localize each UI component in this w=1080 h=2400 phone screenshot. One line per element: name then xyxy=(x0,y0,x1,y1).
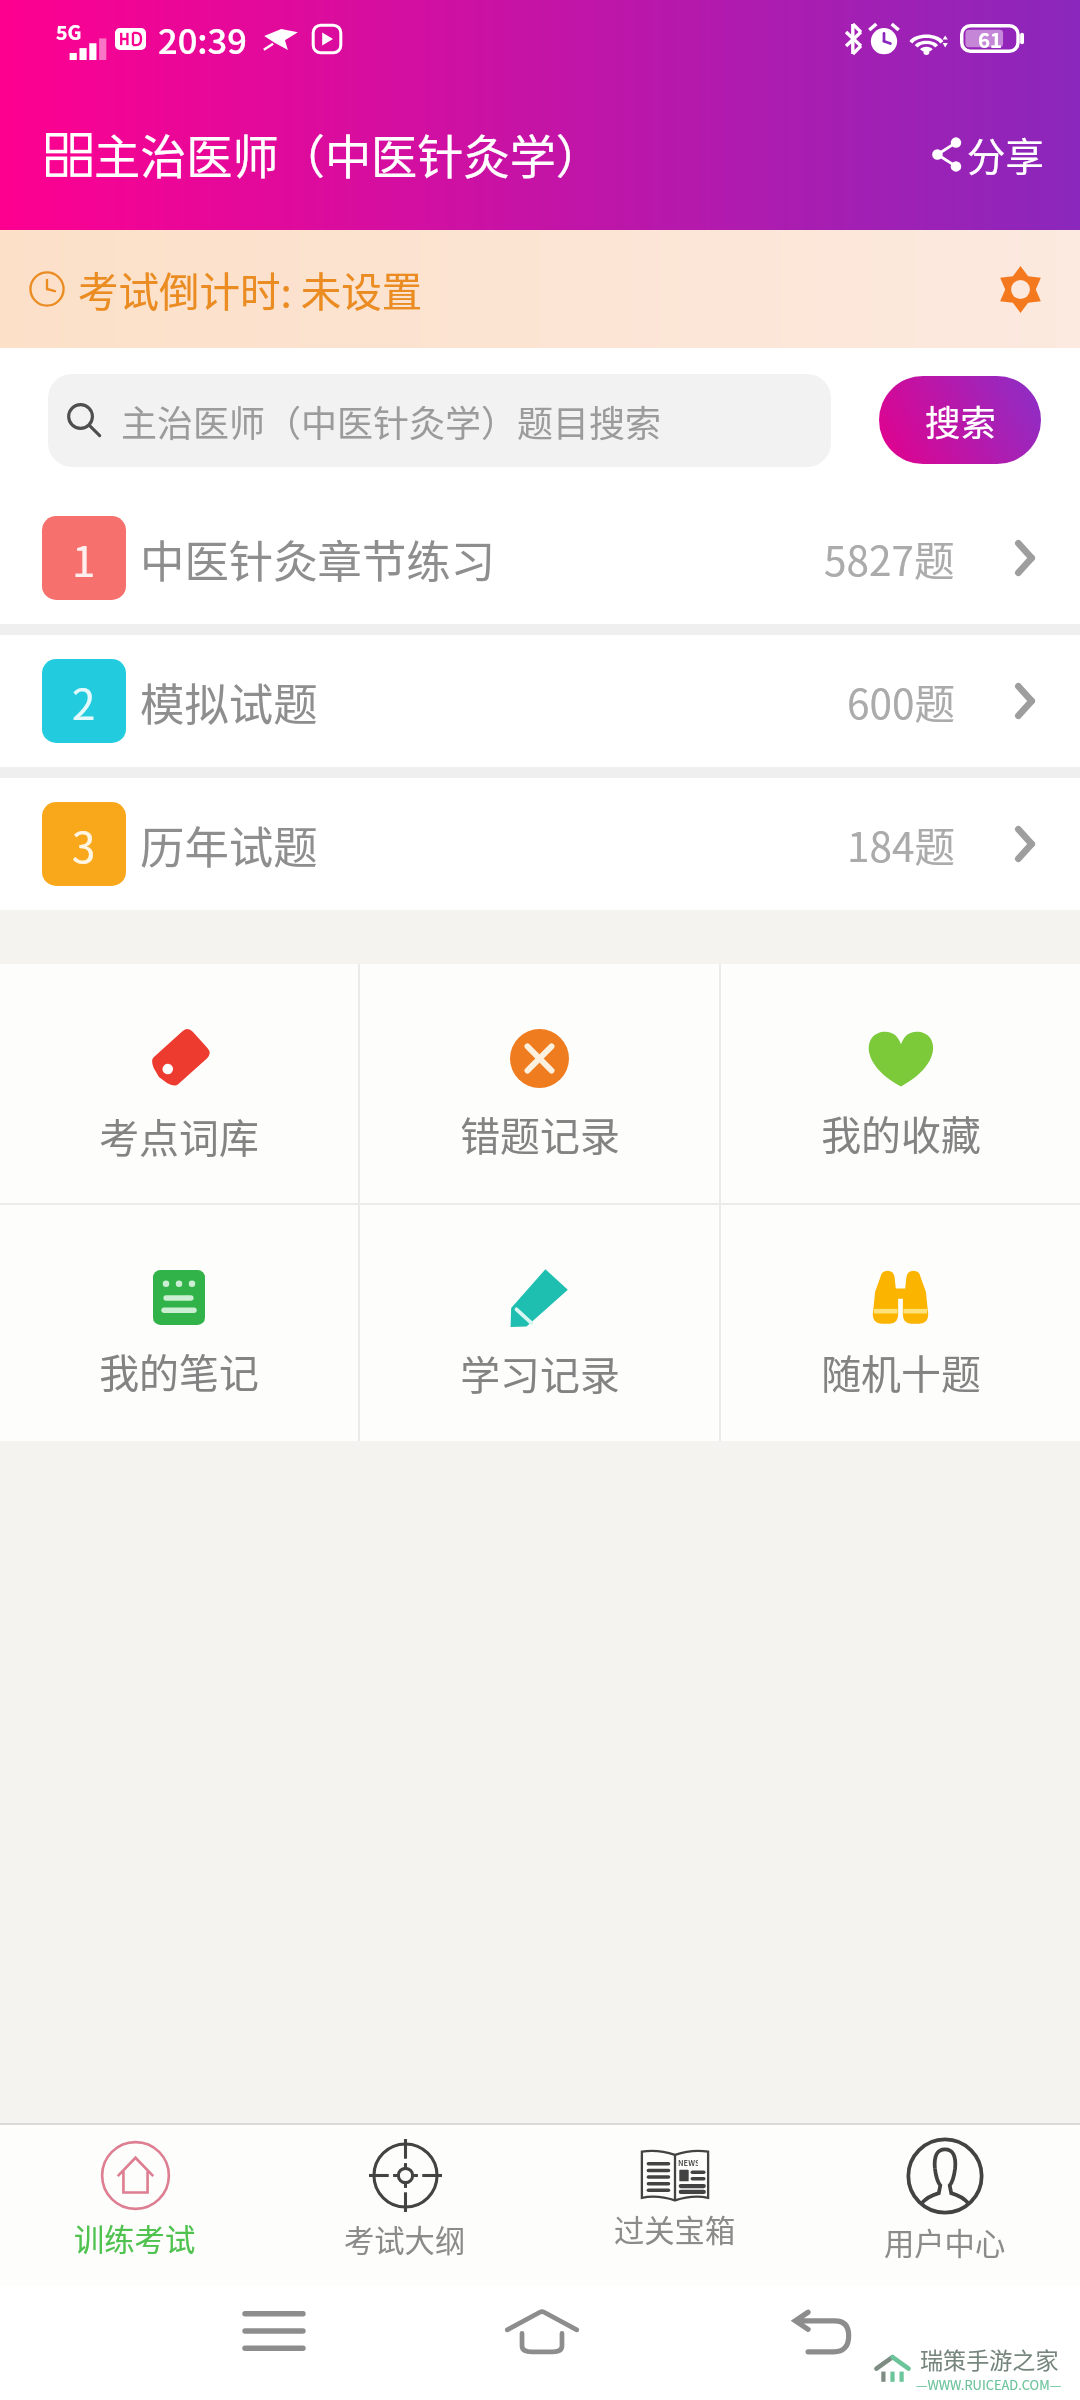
button[interactable]: 搜索 xyxy=(879,376,1041,464)
button[interactable]: 随机十题 xyxy=(721,1205,1080,1441)
button[interactable]: Home xyxy=(505,2310,579,2355)
button[interactable]: 错题记录 xyxy=(360,964,719,1203)
button[interactable]: 3 xyxy=(0,778,1080,910)
staticText: 随机十题 xyxy=(821,1343,981,1401)
staticText: NEWS xyxy=(678,2157,698,2168)
staticText: 瑞策手游之家 xyxy=(920,2342,1059,2375)
button[interactable]: 训练考试 xyxy=(0,2125,270,2285)
staticText: 模拟试题 xyxy=(140,669,318,733)
staticText: 我的收藏 xyxy=(821,1104,981,1162)
button[interactable]: Recent apps xyxy=(245,2311,303,2351)
button[interactable]: Back xyxy=(793,2310,851,2355)
button[interactable]: 我的笔记 xyxy=(0,1205,358,1441)
staticText: 主治医师（中医针灸学） xyxy=(94,120,603,187)
staticText: 考试大纲 xyxy=(344,2217,466,2261)
button[interactable]: 主治医师（中医针灸学）题目搜索 xyxy=(48,374,831,467)
staticText: 20:39 xyxy=(158,14,247,64)
button[interactable]: 学习记录 xyxy=(360,1205,719,1441)
button[interactable]: 考点词库 xyxy=(0,964,358,1203)
staticText: 用户中心 xyxy=(884,2220,1006,2264)
button[interactable]: 用户中心 xyxy=(810,2125,1080,2285)
staticText: —WWW.RUICEAD.COM— xyxy=(916,2375,1062,2394)
button[interactable]: 考试倒计时: 未设置 xyxy=(0,230,1080,348)
staticText: 中医针灸章节练习 xyxy=(140,526,496,590)
button[interactable]: 1 xyxy=(0,492,1080,624)
button[interactable]: 我的收藏 xyxy=(721,964,1080,1203)
staticText: 我的笔记 xyxy=(99,1342,259,1400)
button[interactable]: 2 xyxy=(0,635,1080,767)
staticText: 5G xyxy=(56,17,82,45)
staticText: 5827题 xyxy=(824,529,955,588)
staticText: 61 xyxy=(978,24,1003,53)
staticText: 错题记录 xyxy=(460,1105,620,1163)
staticText: 考试倒计时: 未设置 xyxy=(78,260,423,319)
button[interactable]: 考试大纲 xyxy=(270,2125,540,2285)
staticText: 过关宝箱 xyxy=(614,2207,736,2251)
staticText: 历年试题 xyxy=(140,812,318,876)
staticText: 考点词库 xyxy=(99,1107,259,1165)
staticText: 600题 xyxy=(847,672,955,731)
button[interactable]: NEWS xyxy=(540,2125,810,2285)
staticText: 分享 xyxy=(967,126,1044,182)
staticText: 3 xyxy=(72,814,96,875)
staticText: 训练考试 xyxy=(74,2216,196,2260)
staticText: 1 xyxy=(72,528,96,589)
staticText: 主治医师（中医针灸学）题目搜索 xyxy=(121,395,662,447)
staticText: 搜索 xyxy=(925,395,996,446)
staticText: 学习记录 xyxy=(460,1344,620,1402)
staticText: 184题 xyxy=(847,815,955,874)
staticText: 2 xyxy=(72,671,96,732)
button[interactable]: 分享 xyxy=(926,108,1050,200)
button[interactable]: Settings xyxy=(969,238,1071,340)
